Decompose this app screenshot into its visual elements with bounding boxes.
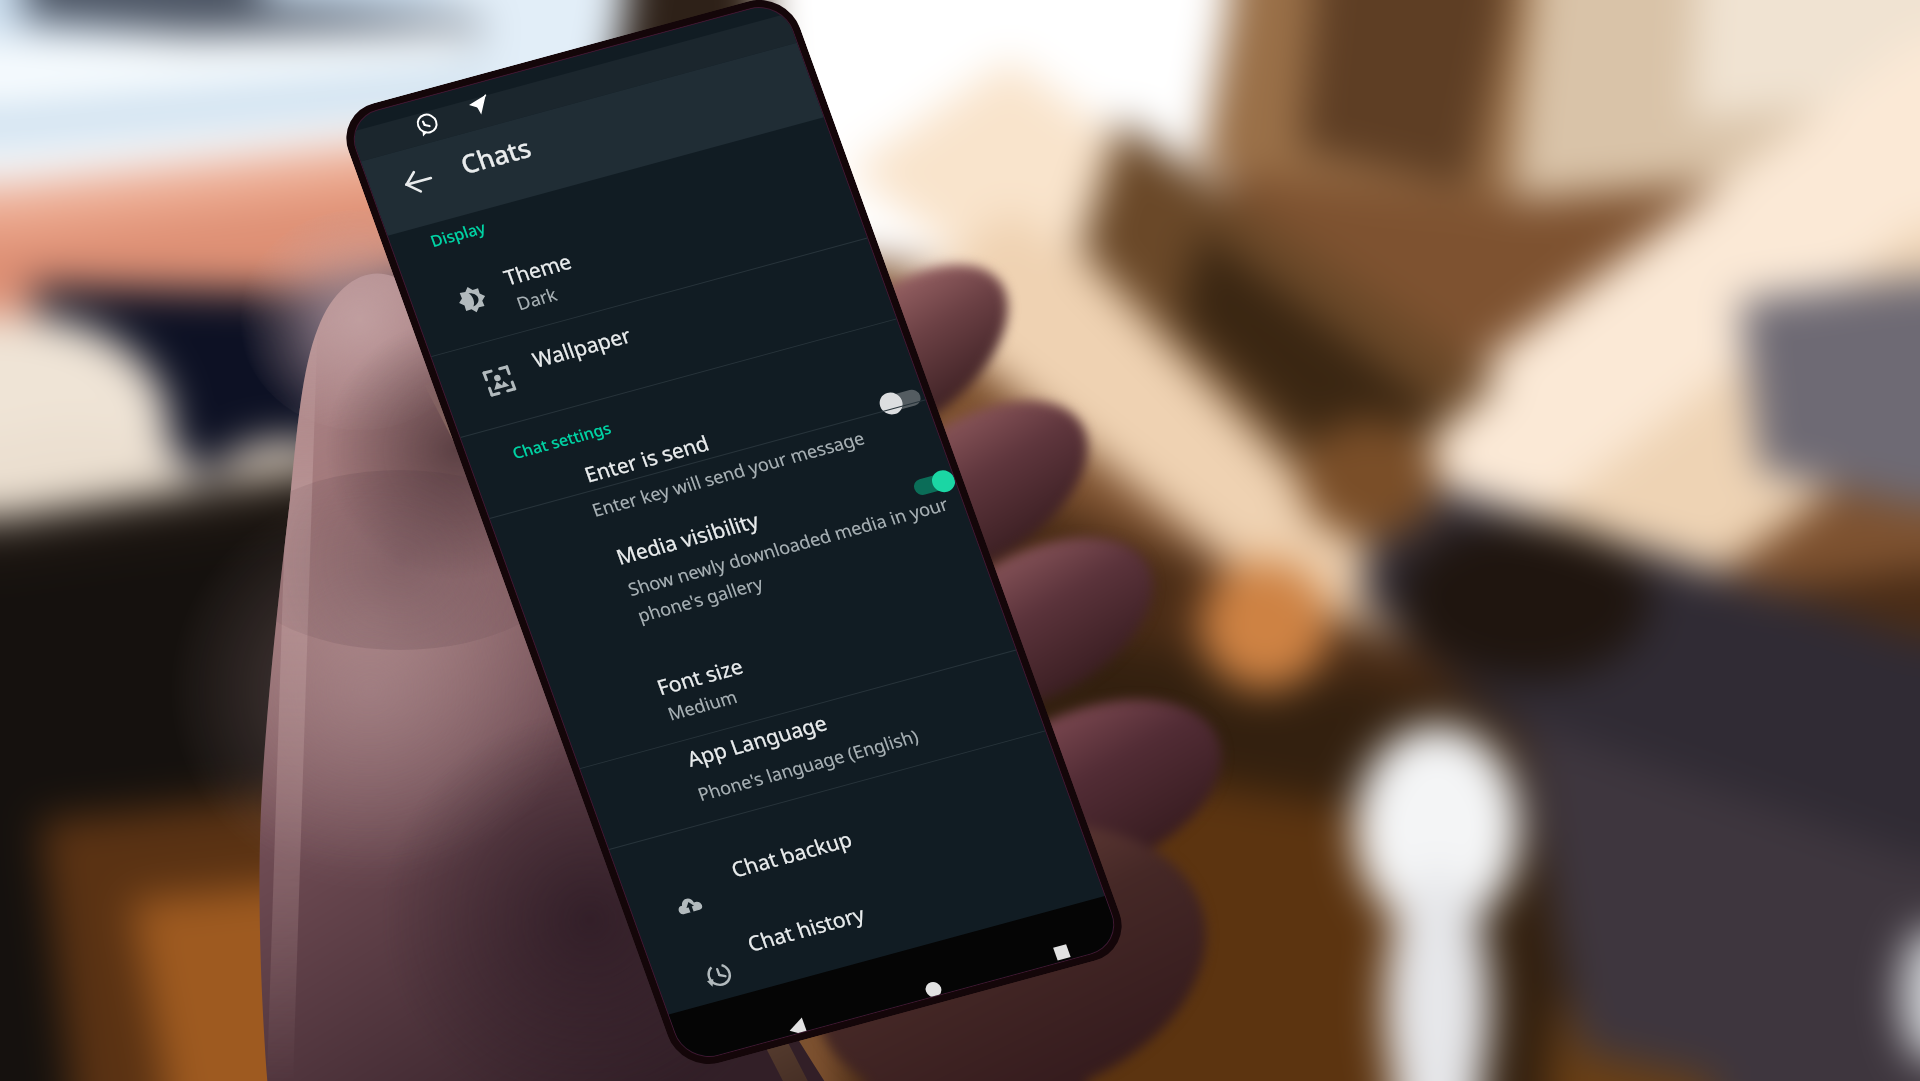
staticText: App Language xyxy=(674,660,840,822)
button[interactable]: Home xyxy=(870,920,987,1033)
button[interactable] xyxy=(475,299,1015,825)
button[interactable]: Back xyxy=(735,958,850,1070)
button[interactable]: Chats xyxy=(445,105,547,205)
staticText: Phone's language (English) xyxy=(687,647,930,884)
staticText: Enter is send xyxy=(571,386,722,532)
button[interactable]: Recents xyxy=(998,882,1117,998)
button[interactable] xyxy=(374,0,893,506)
staticText: Chat history xyxy=(734,859,878,999)
staticText: Chat backup xyxy=(718,783,865,926)
button[interactable] xyxy=(556,498,1067,997)
button[interactable]: Toggle xyxy=(865,365,937,436)
staticText: Wallpaper xyxy=(519,287,644,408)
button[interactable]: Toggle xyxy=(896,450,968,519)
staticText: Enter key will send your message xyxy=(581,330,876,618)
button[interactable]: Back xyxy=(377,142,458,221)
staticText: Font size xyxy=(644,622,756,732)
staticText: Theme xyxy=(491,224,584,315)
staticText: Display xyxy=(420,197,496,271)
button[interactable] xyxy=(454,218,969,720)
staticText: Show newly downloaded media in your phon… xyxy=(608,380,977,739)
button[interactable] xyxy=(435,167,952,671)
staticText: Chats xyxy=(445,105,547,205)
staticText: Media visibility xyxy=(603,457,772,621)
staticText: Dark xyxy=(505,268,569,330)
button[interactable] xyxy=(405,86,923,590)
button[interactable] xyxy=(621,673,1127,1081)
staticText: Medium xyxy=(656,660,749,750)
button[interactable] xyxy=(596,603,1101,1081)
button[interactable] xyxy=(530,425,1040,921)
staticText: Chat settings xyxy=(502,383,621,498)
